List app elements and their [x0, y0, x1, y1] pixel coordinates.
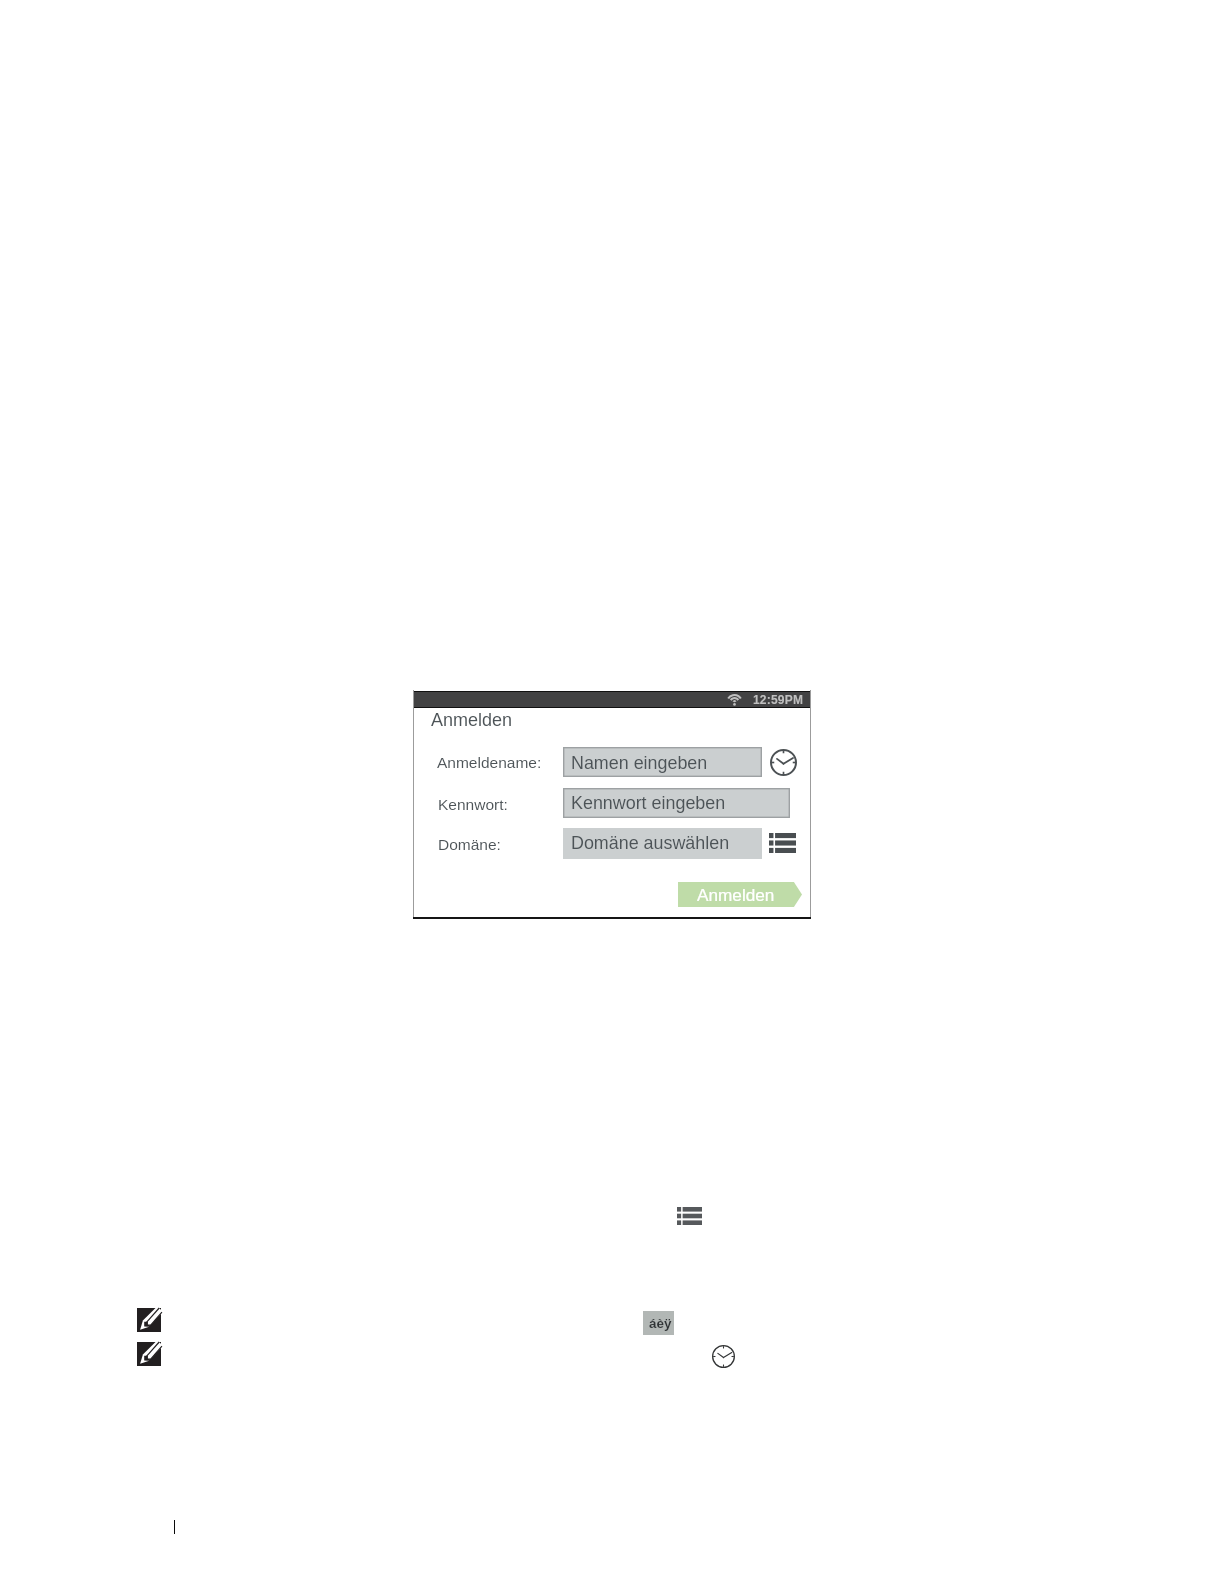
- button[interactable]: Choose domain: [769, 833, 796, 853]
- staticText: Kennwort eingeben: [571, 793, 726, 813]
- button[interactable]: List view: [677, 1207, 702, 1225]
- button[interactable]: Edit: [137, 1308, 161, 1332]
- staticText: Domäne:: [438, 836, 501, 853]
- staticText: 12:59PM: [753, 693, 804, 706]
- button[interactable]: Clock: [712, 1345, 735, 1368]
- button[interactable]: Set time: [770, 749, 797, 776]
- staticText: Anmelden: [431, 710, 513, 730]
- button[interactable]: Domäne auswählen: [563, 828, 762, 859]
- staticText: Kennwort:: [438, 796, 508, 813]
- button[interactable]: Edit: [137, 1342, 161, 1366]
- button[interactable]: Anmelden: [678, 882, 802, 907]
- button[interactable]: Namen eingeben: [563, 747, 762, 777]
- button[interactable]: Kennwort eingeben: [563, 788, 790, 818]
- staticText: Anmeldename:: [437, 754, 542, 771]
- staticText: Domäne auswählen: [571, 833, 730, 853]
- staticText: Namen eingeben: [571, 753, 708, 773]
- staticText: Anmelden: [697, 885, 775, 904]
- staticText: áèÿ: [649, 1316, 672, 1331]
